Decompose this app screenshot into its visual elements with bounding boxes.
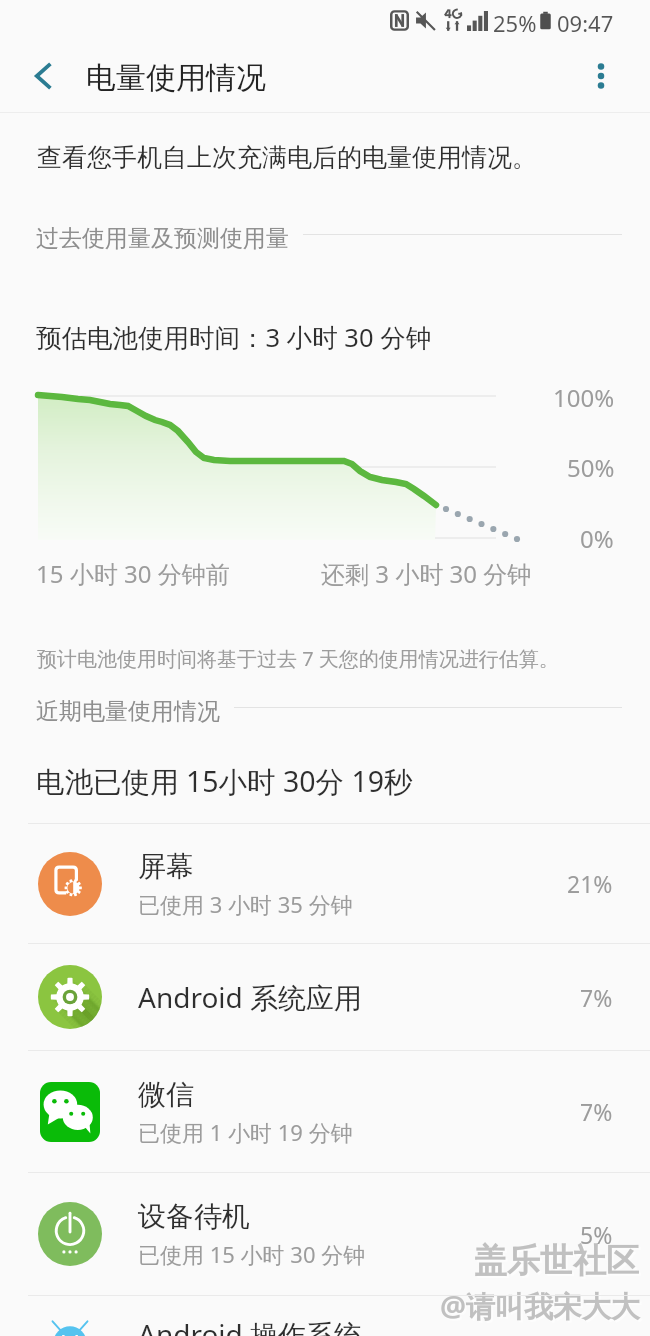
staticText: 25% [493, 8, 537, 38]
staticText: 查看您手机自上次充满电后的电量使用情况。 [37, 142, 537, 173]
staticText: 微信 [138, 1077, 194, 1112]
button[interactable]: Android 操作系统 [0, 1296, 650, 1336]
staticText: 已使用 1 小时 19 分钟 [138, 1117, 353, 1147]
button[interactable]: 微信 [0, 1051, 650, 1172]
staticText: 预计电池使用时间将基于过去 7 天您的使用情况进行估算。 [37, 645, 559, 672]
button[interactable]: Android 系统应用 [0, 944, 650, 1050]
staticText: Android 系统应用 [138, 978, 363, 1016]
staticText: 09:47 [557, 8, 614, 38]
staticText: 电量使用情况 [86, 59, 266, 97]
button[interactable]: 设备待机 [0, 1173, 650, 1295]
staticText: 5% [580, 1219, 613, 1250]
staticText: 50% [567, 451, 615, 484]
staticText: @请叫我宋大大 [440, 1286, 641, 1326]
staticText: 已使用 15 小时 30 分钟 [138, 1239, 366, 1269]
button[interactable]: Back [20, 53, 66, 99]
staticText: 15 小时 30 分钟前 [36, 557, 230, 590]
staticText: Android 操作系统 [138, 1315, 363, 1336]
staticText: 盖乐世社区 [476, 1242, 641, 1284]
staticText: 7% [580, 982, 613, 1013]
staticText: @请叫我宋大大 [442, 1288, 643, 1328]
staticText: 100% [553, 381, 615, 414]
staticText: 0% [580, 522, 614, 555]
staticText: 设备待机 [138, 1199, 250, 1234]
staticText: 屏幕 [138, 849, 194, 884]
button[interactable]: More options [578, 53, 624, 99]
staticText: 21% [567, 868, 613, 899]
staticText: 过去使用量及预测使用量 [36, 224, 289, 253]
staticText: 电池已使用 15小时 30分 19秒 [36, 762, 413, 801]
staticText: 已使用 3 小时 35 分钟 [138, 889, 353, 919]
staticText: 盖乐世社区 [474, 1240, 639, 1282]
staticText: 预估电池使用时间：3 小时 30 分钟 [36, 320, 432, 355]
staticText: 近期电量使用情况 [36, 697, 220, 726]
staticText: 7% [580, 1096, 613, 1127]
button[interactable]: 屏幕 [0, 824, 650, 943]
staticText: 还剩 3 小时 30 分钟 [321, 557, 532, 590]
